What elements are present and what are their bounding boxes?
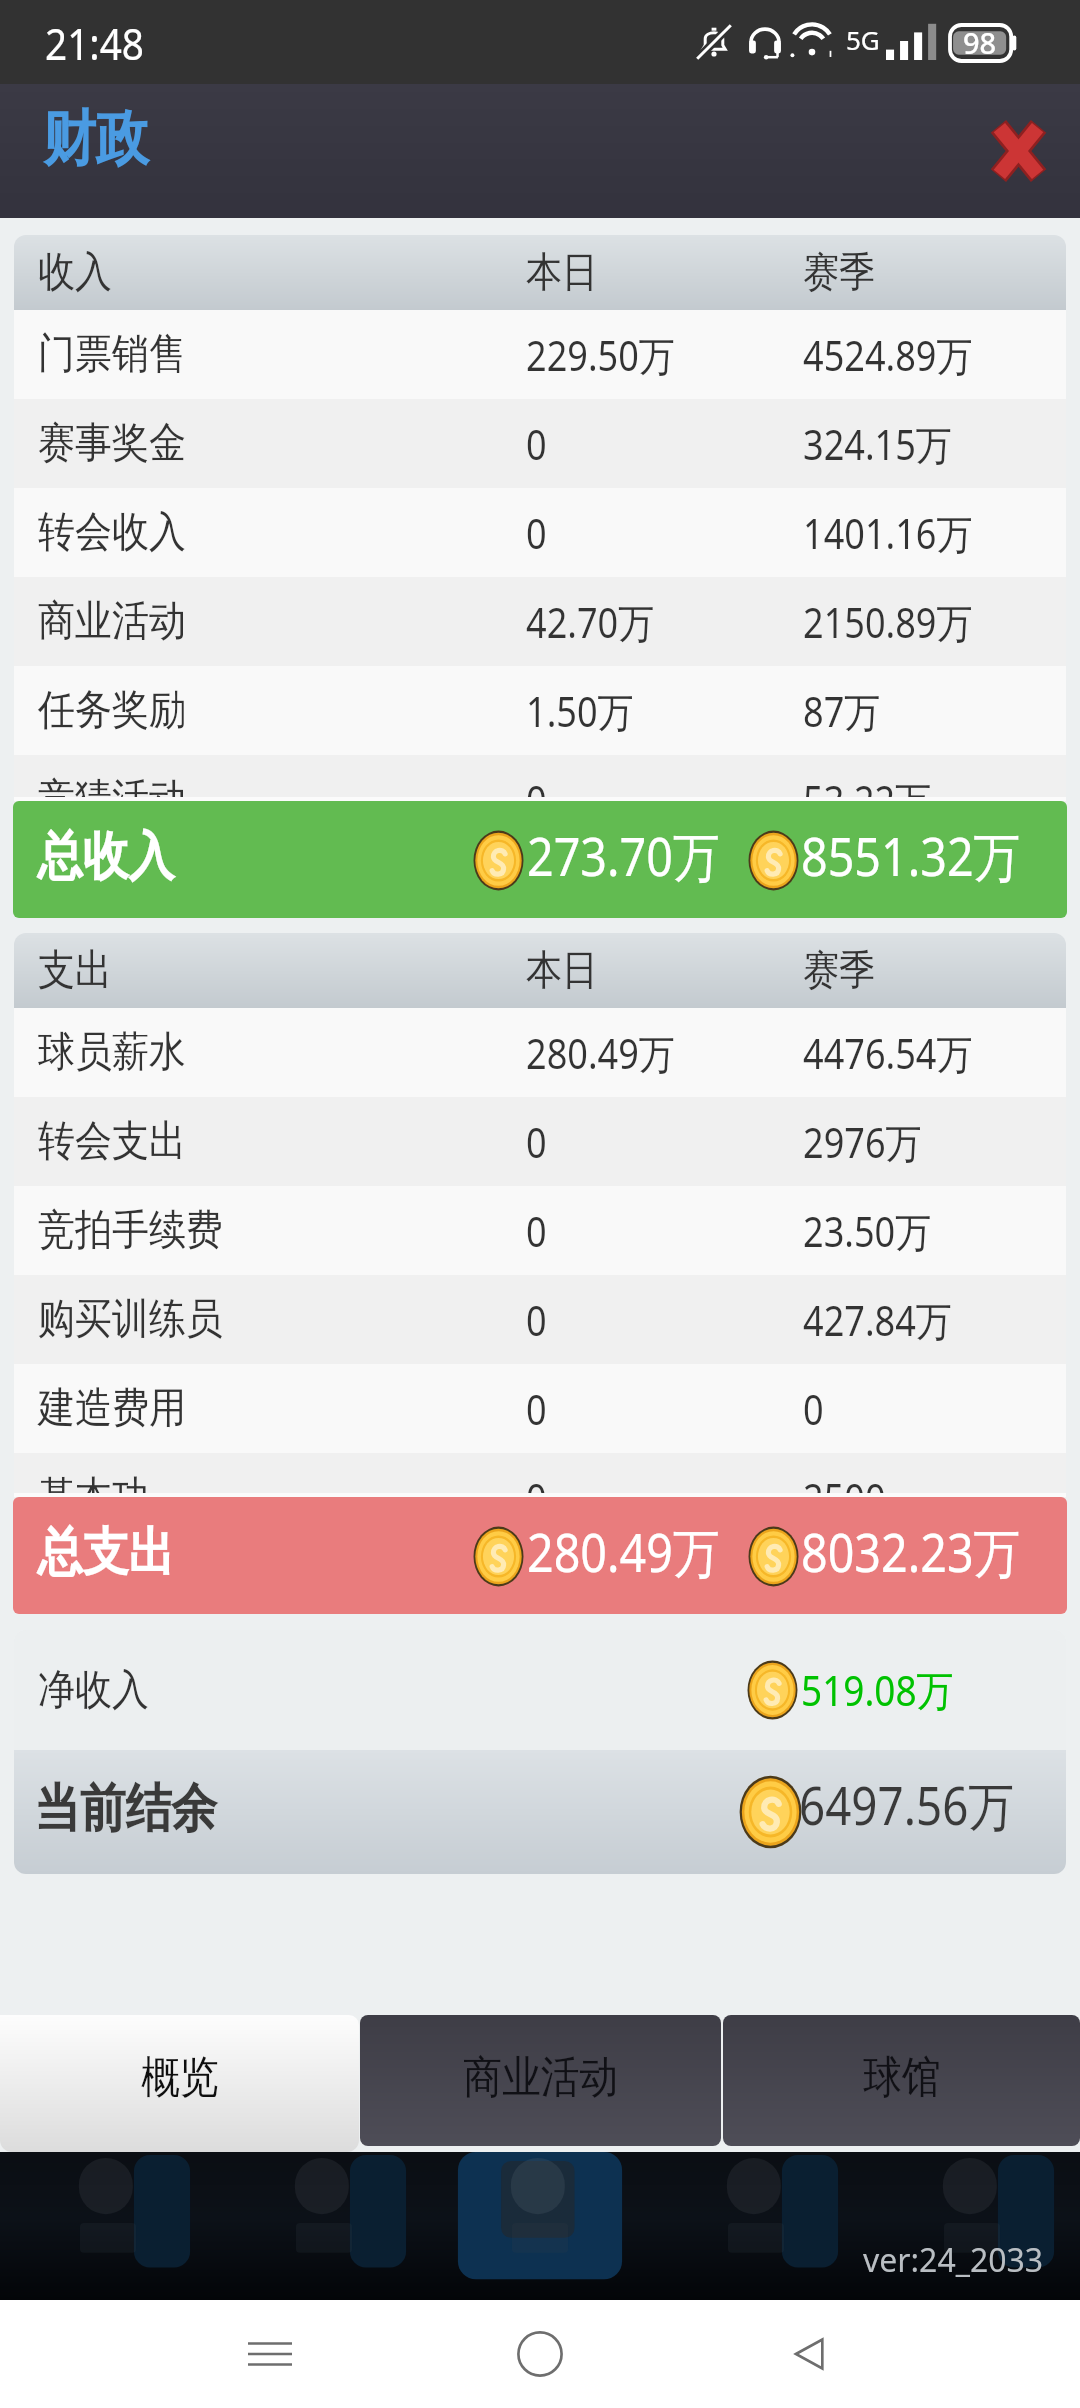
staticText: ver:24_2033 [863,2238,1044,2282]
button[interactable]: 建造费用 [14,1364,1066,1453]
staticText: 赛季 [803,247,875,299]
button[interactable]: 购买训练员 [14,1275,1066,1364]
staticText: 当前结余 [34,1776,217,1842]
button[interactable]: 转会收入 [14,488,1066,577]
staticText: 竞猜活动 [38,773,186,826]
staticText: 总收入 [37,824,174,890]
staticText: 转会支出 [38,1115,186,1168]
staticText: 本日 [526,945,598,997]
staticText: 8551.32万 [801,819,1021,891]
staticText: 0 [526,1292,547,1348]
staticText: 87万 [803,683,880,739]
staticText: 6497.56万 [799,1769,1015,1840]
staticText: 0 [526,1470,547,1526]
staticText: 42.70万 [526,594,654,650]
staticText: 229.50万 [526,327,676,383]
button[interactable]: 球员薪水 [14,1008,1066,1097]
staticText: 280.49万 [527,1515,720,1587]
button[interactable]: 当前结余 [14,1750,1066,1874]
staticText: 商业活动 [38,595,186,648]
button[interactable]: 赛事奖金 [14,399,1066,488]
staticText: 收入 [38,246,112,299]
staticText: 1.50万 [526,683,634,739]
staticText: 净收入 [38,1664,149,1717]
button[interactable]: 基本功 [14,1453,1066,1542]
button[interactable]: 商业活动 [360,2015,721,2146]
staticText: 53.22万 [803,772,931,828]
staticText: 购买训练员 [38,1293,223,1346]
staticText: 0 [526,416,547,472]
button[interactable]: 转会支出 [14,1097,1066,1186]
staticText: 0 [526,1114,547,1170]
button[interactable]: 净收入 [14,1630,1066,1750]
staticText: 4476.54万 [803,1025,973,1081]
staticText: 98 [963,23,997,62]
button[interactable]: 门票销售 [14,310,1066,399]
staticText: 5G [846,22,880,57]
staticText: 324.15万 [803,416,953,472]
staticText: 280.49万 [526,1025,676,1081]
button[interactable]: 商业活动 [14,577,1066,666]
staticText: 财政 [43,101,149,177]
staticText: 0 [526,505,547,561]
staticText: 建造费用 [38,1382,186,1435]
button[interactable]: Back [762,2306,858,2402]
staticText: 21:48 [45,13,144,73]
button[interactable]: 概览 [0,2015,359,2152]
staticText: 4524.89万 [803,327,973,383]
staticText: 基本功 [38,1471,149,1524]
staticText: 273.70万 [527,819,720,891]
staticText: 商业活动 [464,2050,618,2105]
staticText: 23.50万 [803,1203,931,1259]
staticText: 赛事奖金 [38,417,186,470]
staticText: 本日 [526,247,598,299]
staticText: 竞拍手续费 [38,1204,223,1257]
button[interactable]: Recents [222,2306,318,2402]
staticText: 支出 [38,944,112,997]
staticText: 概览 [141,2050,219,2105]
staticText: 球员薪水 [38,1026,186,1079]
staticText: 0 [803,1381,824,1437]
staticText: 0 [526,772,547,828]
staticText: 球馆 [863,2050,941,2105]
staticText: 1401.16万 [803,505,973,561]
button[interactable]: 关闭 [970,103,1066,199]
staticText: 427.84万 [803,1292,953,1348]
staticText: 任务奖励 [38,684,186,737]
button[interactable]: 竞拍手续费 [14,1186,1066,1275]
staticText: 门票销售 [38,328,186,381]
staticText: 0 [526,1203,547,1259]
staticText: 赛季 [803,945,875,997]
button[interactable]: Home [492,2306,588,2402]
button[interactable]: 总收入 [13,801,1067,918]
button[interactable]: 球馆 [723,2015,1080,2146]
button[interactable]: 竞猜活动 [14,755,1066,844]
staticText: 2150.89万 [803,594,973,650]
staticText: 转会收入 [38,506,186,559]
staticText: 2500 [803,1470,886,1526]
staticText: 总支出 [37,1520,174,1586]
staticText: 2976万 [803,1114,922,1170]
staticText: 8032.23万 [801,1515,1021,1587]
button[interactable]: 任务奖励 [14,666,1066,755]
staticText: 519.08万 [801,1661,954,1718]
button[interactable]: 总支出 [13,1497,1067,1614]
staticText: 0 [526,1381,547,1437]
